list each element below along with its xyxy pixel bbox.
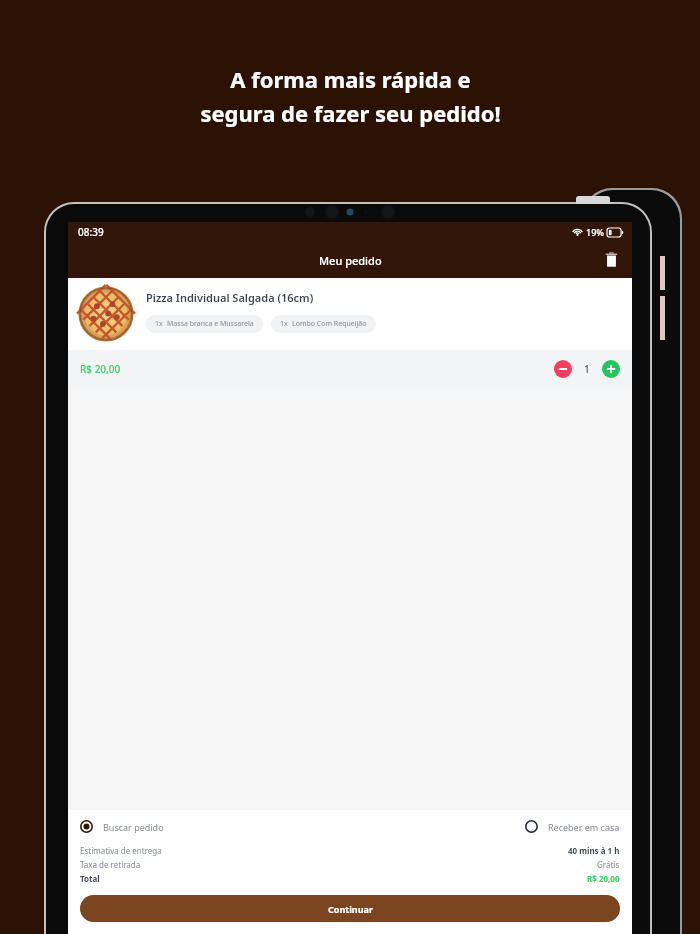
staticText: Receber em casa — [548, 821, 620, 833]
staticText: Total — [80, 873, 100, 884]
staticText: 1 — [584, 362, 590, 376]
staticText: 1x — [280, 319, 288, 329]
staticText: 19% — [586, 226, 604, 238]
button[interactable]: Pizza Individual Salgada (16cm) — [68, 278, 632, 388]
staticText: R$ 20,00 — [587, 873, 620, 884]
button[interactable]: Continuar — [80, 895, 620, 922]
staticText: 40 mins à 1 h — [568, 845, 620, 856]
staticText: Buscar pedido — [103, 821, 164, 833]
staticText: 08:39 — [78, 225, 104, 239]
staticText: Continuar — [328, 903, 373, 915]
staticText: Lombo Com Requeijão — [292, 319, 367, 329]
staticText: Estimativa de entrega — [80, 845, 162, 856]
staticText: R$ 20,00 — [80, 362, 121, 376]
staticText: segura de fazer seu pedido! — [200, 98, 501, 128]
staticText: A forma mais rápida e — [230, 64, 471, 94]
staticText: 1x — [155, 319, 163, 329]
staticText: Meu pedido — [319, 253, 382, 268]
button[interactable]: Receber em casa — [525, 820, 620, 833]
button[interactable]: Buscar pedido — [80, 820, 164, 833]
button[interactable]: Aumentar quantidade — [602, 360, 620, 378]
staticText: Pizza Individual Salgada (16cm) — [146, 290, 314, 305]
staticText: Taxa de retirada — [80, 859, 141, 870]
button[interactable]: Limpar pedido — [598, 247, 624, 273]
button[interactable]: Diminuir quantidade — [554, 360, 572, 378]
staticText: Grátis — [597, 859, 620, 870]
staticText: Massa branca e Mussarela — [167, 319, 254, 329]
